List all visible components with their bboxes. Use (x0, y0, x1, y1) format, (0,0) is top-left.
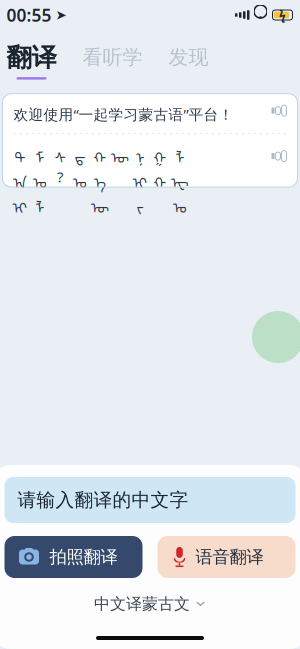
staticText: ᠵ (136, 192, 143, 217)
staticText: ᠦ (111, 142, 129, 167)
staticText: 中文译蒙古文 (94, 594, 190, 614)
staticText: 语音翻译 (195, 546, 263, 568)
staticText: ᠯ (175, 142, 184, 167)
staticText: 发现 (168, 45, 208, 70)
staticText: 看听学 (82, 45, 142, 70)
button[interactable]: 拍照翻译 (4, 536, 142, 578)
staticText: ᠰ (54, 142, 65, 167)
staticText: ᠤ (173, 192, 187, 217)
button[interactable]: 请输入翻译的中文字 (4, 477, 295, 523)
button[interactable]: 发现 (142, 42, 208, 70)
staticText: 欢迎使用“一起学习蒙古语”平台！ (13, 105, 233, 124)
staticText: ᠧ (171, 167, 189, 192)
button[interactable]: 朗读中文 (271, 105, 286, 117)
button[interactable]: 朗读蒙古文 (271, 150, 286, 162)
staticText: ᠢ (132, 167, 147, 192)
staticText: ᠢ (12, 192, 27, 217)
staticText: ᠡ (94, 167, 106, 192)
staticText: ᠲ (14, 142, 25, 167)
staticText: ᠳ (74, 142, 85, 167)
staticText: ᠠ (13, 167, 27, 192)
staticText: ᠥ (91, 192, 109, 217)
staticText: ᠮ (35, 142, 44, 167)
button[interactable]: 看听学 (56, 42, 142, 70)
staticText: ? (57, 167, 63, 187)
staticText: ➤ (51, 7, 66, 22)
staticText: 00:55 (6, 3, 51, 26)
button[interactable]: 翻译 (6, 42, 56, 80)
staticText: ϟ (279, 7, 286, 23)
staticText: ᠬ (153, 167, 166, 192)
staticText: 拍照翻译 (49, 546, 117, 568)
button[interactable]: 语音翻译 (157, 536, 295, 578)
staticText: 请输入翻译的中文字 (17, 488, 188, 511)
button[interactable]: 中文译蒙古文 (84, 589, 216, 619)
staticText: ᠣ (33, 167, 47, 192)
staticText: ᠨ (135, 142, 144, 167)
staticText: 翻译 (6, 42, 56, 73)
staticText: ᠭ (153, 142, 166, 167)
staticText: ᠯ (35, 192, 44, 217)
staticText: ᠬ (93, 142, 106, 167)
staticText: ᠤ (73, 167, 87, 192)
